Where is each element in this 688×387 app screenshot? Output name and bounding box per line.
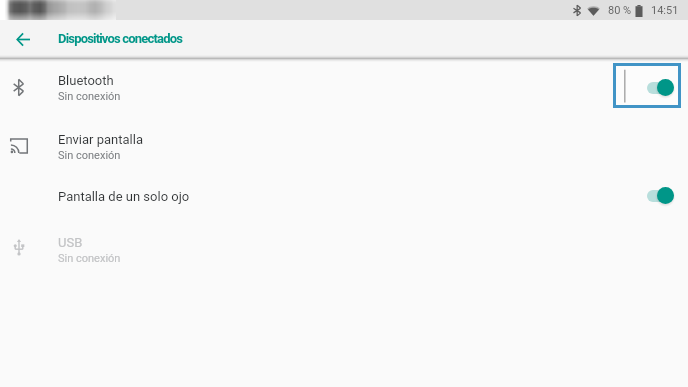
staticText: Sin conexión [58,252,121,265]
staticText: 14:51 [651,4,679,17]
button[interactable]: Bluetooth [0,59,688,117]
button[interactable]: Pantalla de un solo ojo [647,187,675,206]
staticText: Sin conexión [58,149,121,162]
staticText: Bluetooth [58,73,114,88]
staticText: Dispositivos conectados [58,31,183,46]
staticText: USB [58,235,83,250]
button[interactable]: Atrás [7,24,37,54]
button[interactable] [647,79,675,98]
button[interactable]: USB [0,221,688,279]
staticText: Pantalla de un solo ojo [58,189,190,204]
staticText: Sin conexión [58,90,121,103]
staticText: Enviar pantalla [58,132,143,147]
button[interactable]: Activar Bluetooth [613,63,681,108]
staticText: 80 % [608,4,632,17]
button[interactable]: Enviar pantalla [0,118,688,176]
button[interactable]: Pantalla de un solo ojo [0,177,688,217]
